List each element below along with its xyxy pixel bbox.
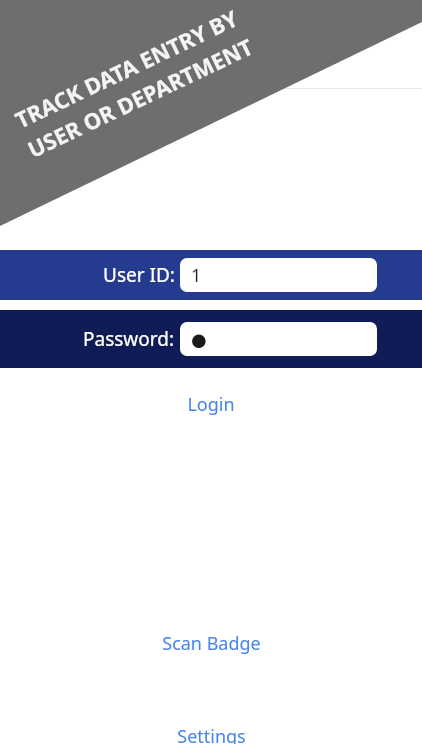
button[interactable]: Password: <box>0 310 422 368</box>
button[interactable]: User ID: <box>0 250 422 300</box>
staticText: User ID: <box>103 262 175 288</box>
staticText: 1 <box>191 263 202 288</box>
staticText: Settings <box>177 724 246 744</box>
staticText: TRACK DATA ENTRY BY <box>9 2 243 135</box>
staticText: USER OR DEPARTMENT <box>22 31 257 164</box>
button[interactable]: Settings <box>0 718 422 750</box>
button[interactable]: ● <box>180 322 377 356</box>
staticText: ● <box>191 329 207 350</box>
button[interactable]: Scan Badge <box>0 625 422 662</box>
staticText: Scan Badge <box>162 631 261 656</box>
button[interactable]: Login <box>0 386 422 423</box>
button[interactable]: 1 <box>180 258 377 292</box>
staticText: Password: <box>83 326 175 352</box>
staticText: Login <box>187 392 235 417</box>
